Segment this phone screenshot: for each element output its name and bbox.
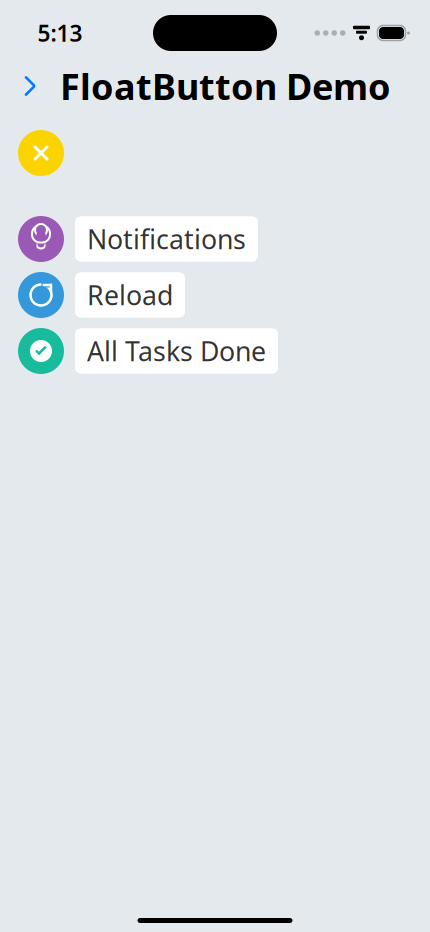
staticText: All Tasks Done	[87, 333, 266, 369]
button[interactable]: Reload	[18, 272, 185, 318]
staticText: FloatButton Demo	[60, 62, 391, 110]
button[interactable]: All Tasks Done	[18, 328, 278, 374]
button[interactable]: Close menu	[18, 130, 64, 176]
button[interactable]: Back	[8, 64, 52, 108]
staticText: Notifications	[87, 221, 246, 257]
button[interactable]: Notifications	[18, 216, 258, 262]
staticText: Reload	[87, 277, 173, 313]
staticText: 5:13	[37, 18, 82, 48]
